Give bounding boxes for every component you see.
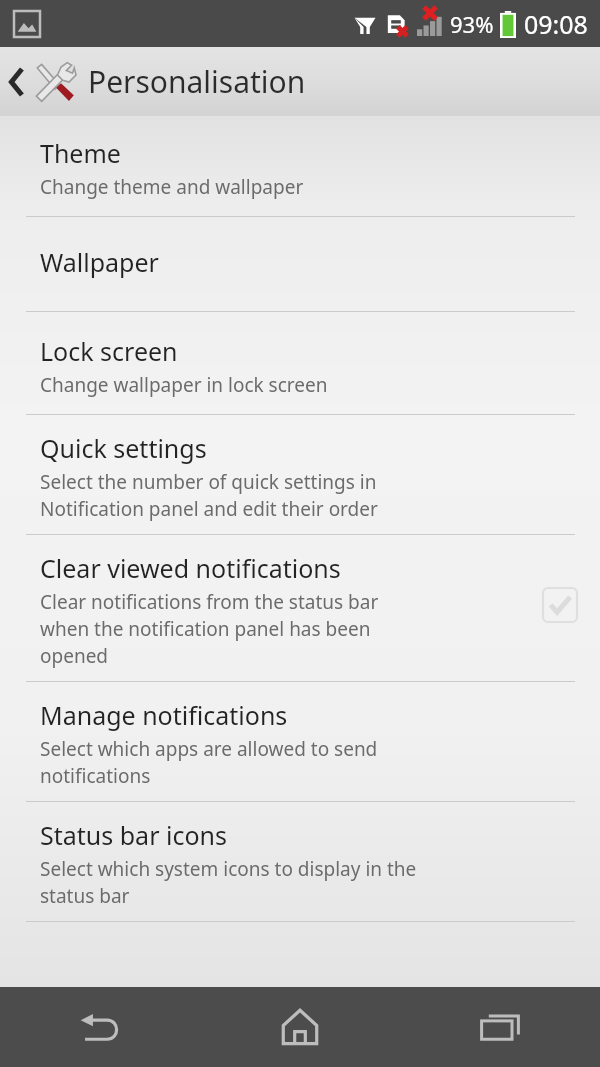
staticText: Select which system icons to display in … [40, 856, 417, 909]
button[interactable]: Manage notifications [0, 682, 600, 801]
staticText: Status bar icons [40, 818, 227, 852]
staticText: Personalisation [88, 61, 306, 102]
button[interactable]: Status bar icons [0, 802, 600, 921]
button[interactable]: Theme [0, 116, 600, 216]
staticText: 09:08 [524, 7, 588, 41]
button[interactable]: Quick settings [0, 415, 600, 534]
button[interactable]: Home [200, 987, 400, 1067]
staticText: Manage notifications [40, 698, 288, 732]
button[interactable]: Back [0, 47, 80, 116]
staticText: 93% [450, 9, 494, 39]
button[interactable]: Recent apps [400, 987, 600, 1067]
button[interactable]: Wallpaper [0, 217, 600, 311]
button[interactable]: Back [0, 987, 200, 1067]
button[interactable]: Clear viewed notifications checkbox [542, 587, 578, 623]
staticText: Select which apps are allowed to send no… [40, 736, 378, 789]
staticText: Quick settings [40, 431, 207, 465]
staticText: Clear notifications from the status bar … [40, 589, 379, 669]
staticText: Change wallpaper in lock screen [40, 372, 328, 398]
staticText: Lock screen [40, 334, 178, 368]
staticText: Theme [40, 136, 121, 170]
staticText: Select the number of quick settings in N… [40, 469, 378, 522]
staticText: Change theme and wallpaper [40, 174, 304, 200]
button[interactable]: Lock screen [0, 312, 600, 414]
staticText: Wallpaper [40, 245, 159, 279]
staticText: Clear viewed notifications [40, 551, 341, 585]
button[interactable]: Clear viewed notifications [0, 535, 600, 681]
